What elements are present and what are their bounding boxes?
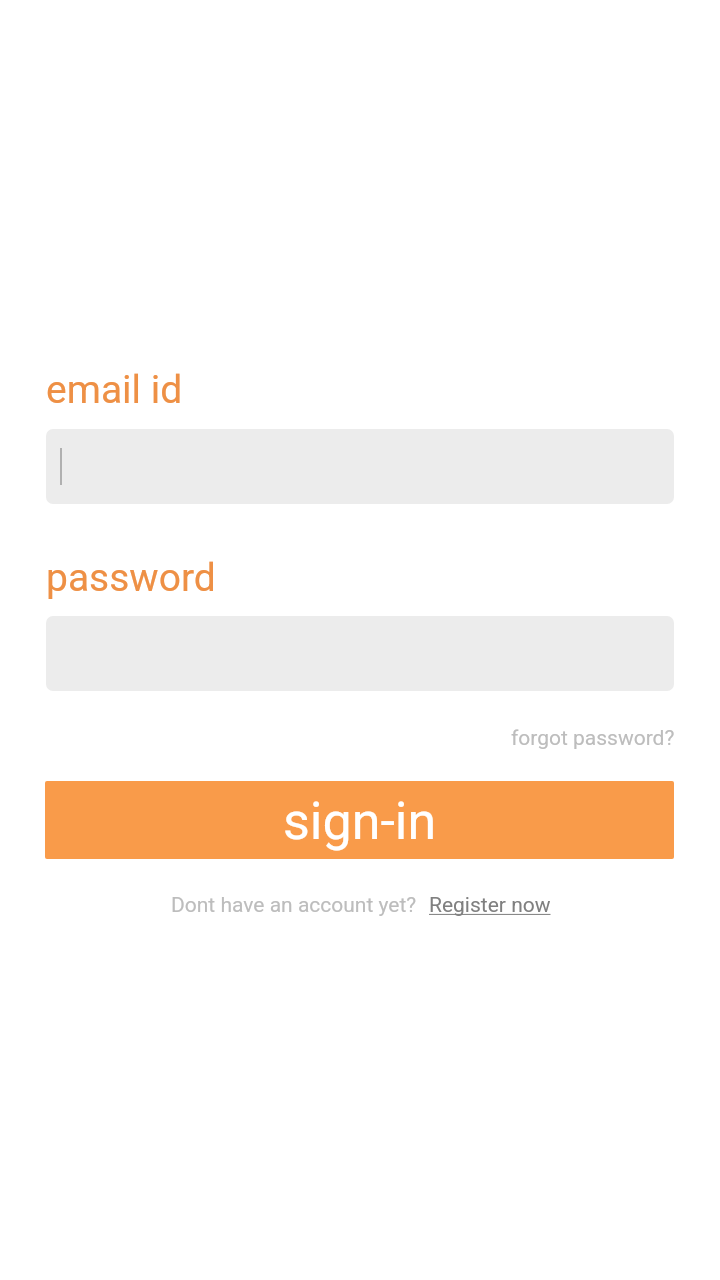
button[interactable]: Register now bbox=[429, 893, 551, 918]
staticText: email id bbox=[46, 367, 183, 413]
staticText: forgot password? bbox=[511, 726, 675, 751]
staticText: Dont have an account yet? bbox=[171, 893, 417, 918]
staticText: Register now bbox=[429, 893, 551, 918]
button[interactable]: forgot password? bbox=[511, 726, 675, 751]
staticText: sign-in bbox=[283, 791, 437, 852]
staticText: password bbox=[46, 555, 216, 601]
button[interactable]: sign-in bbox=[45, 781, 674, 859]
